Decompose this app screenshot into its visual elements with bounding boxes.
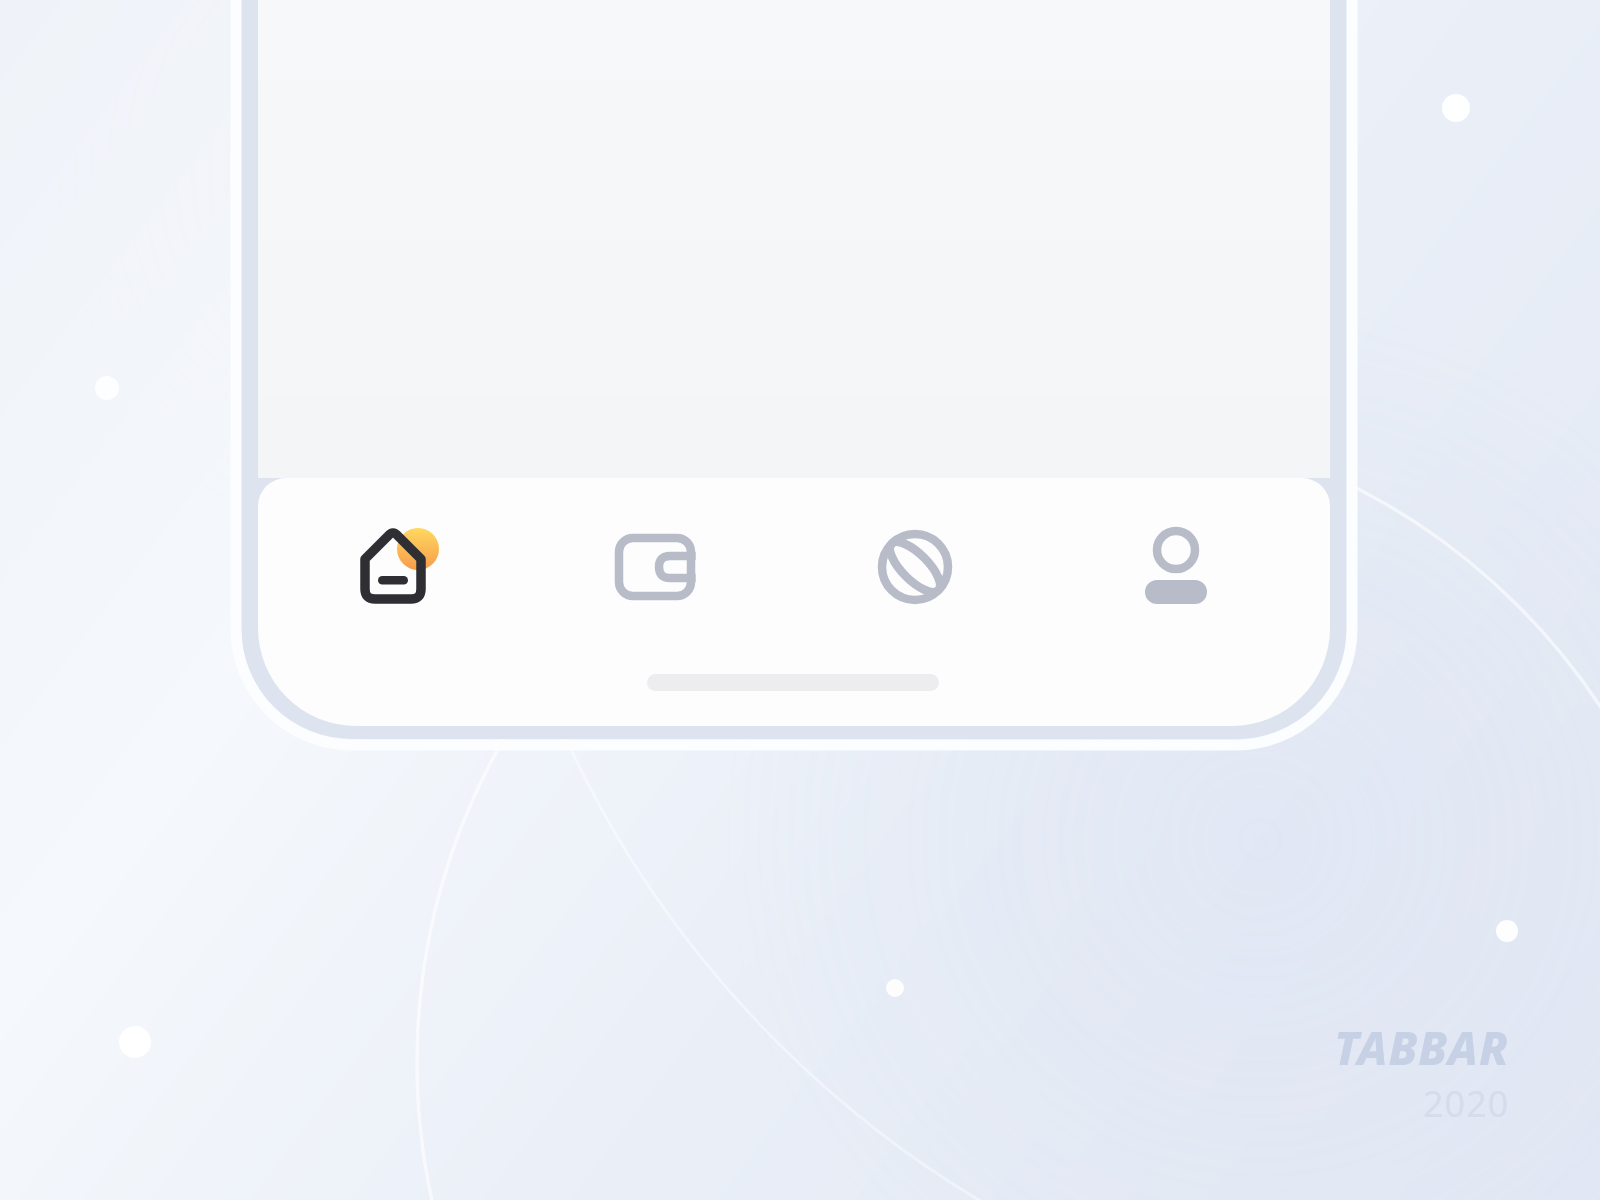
staticText: TABBAR (1334, 1016, 1510, 1079)
button[interactable]: Home (0, 0, 1600, 1200)
button[interactable]: Explore (0, 0, 1600, 1200)
button[interactable]: Wallet (0, 0, 1600, 1200)
staticText: 2020 (1423, 1079, 1510, 1128)
button[interactable]: Profile (0, 0, 1600, 1200)
